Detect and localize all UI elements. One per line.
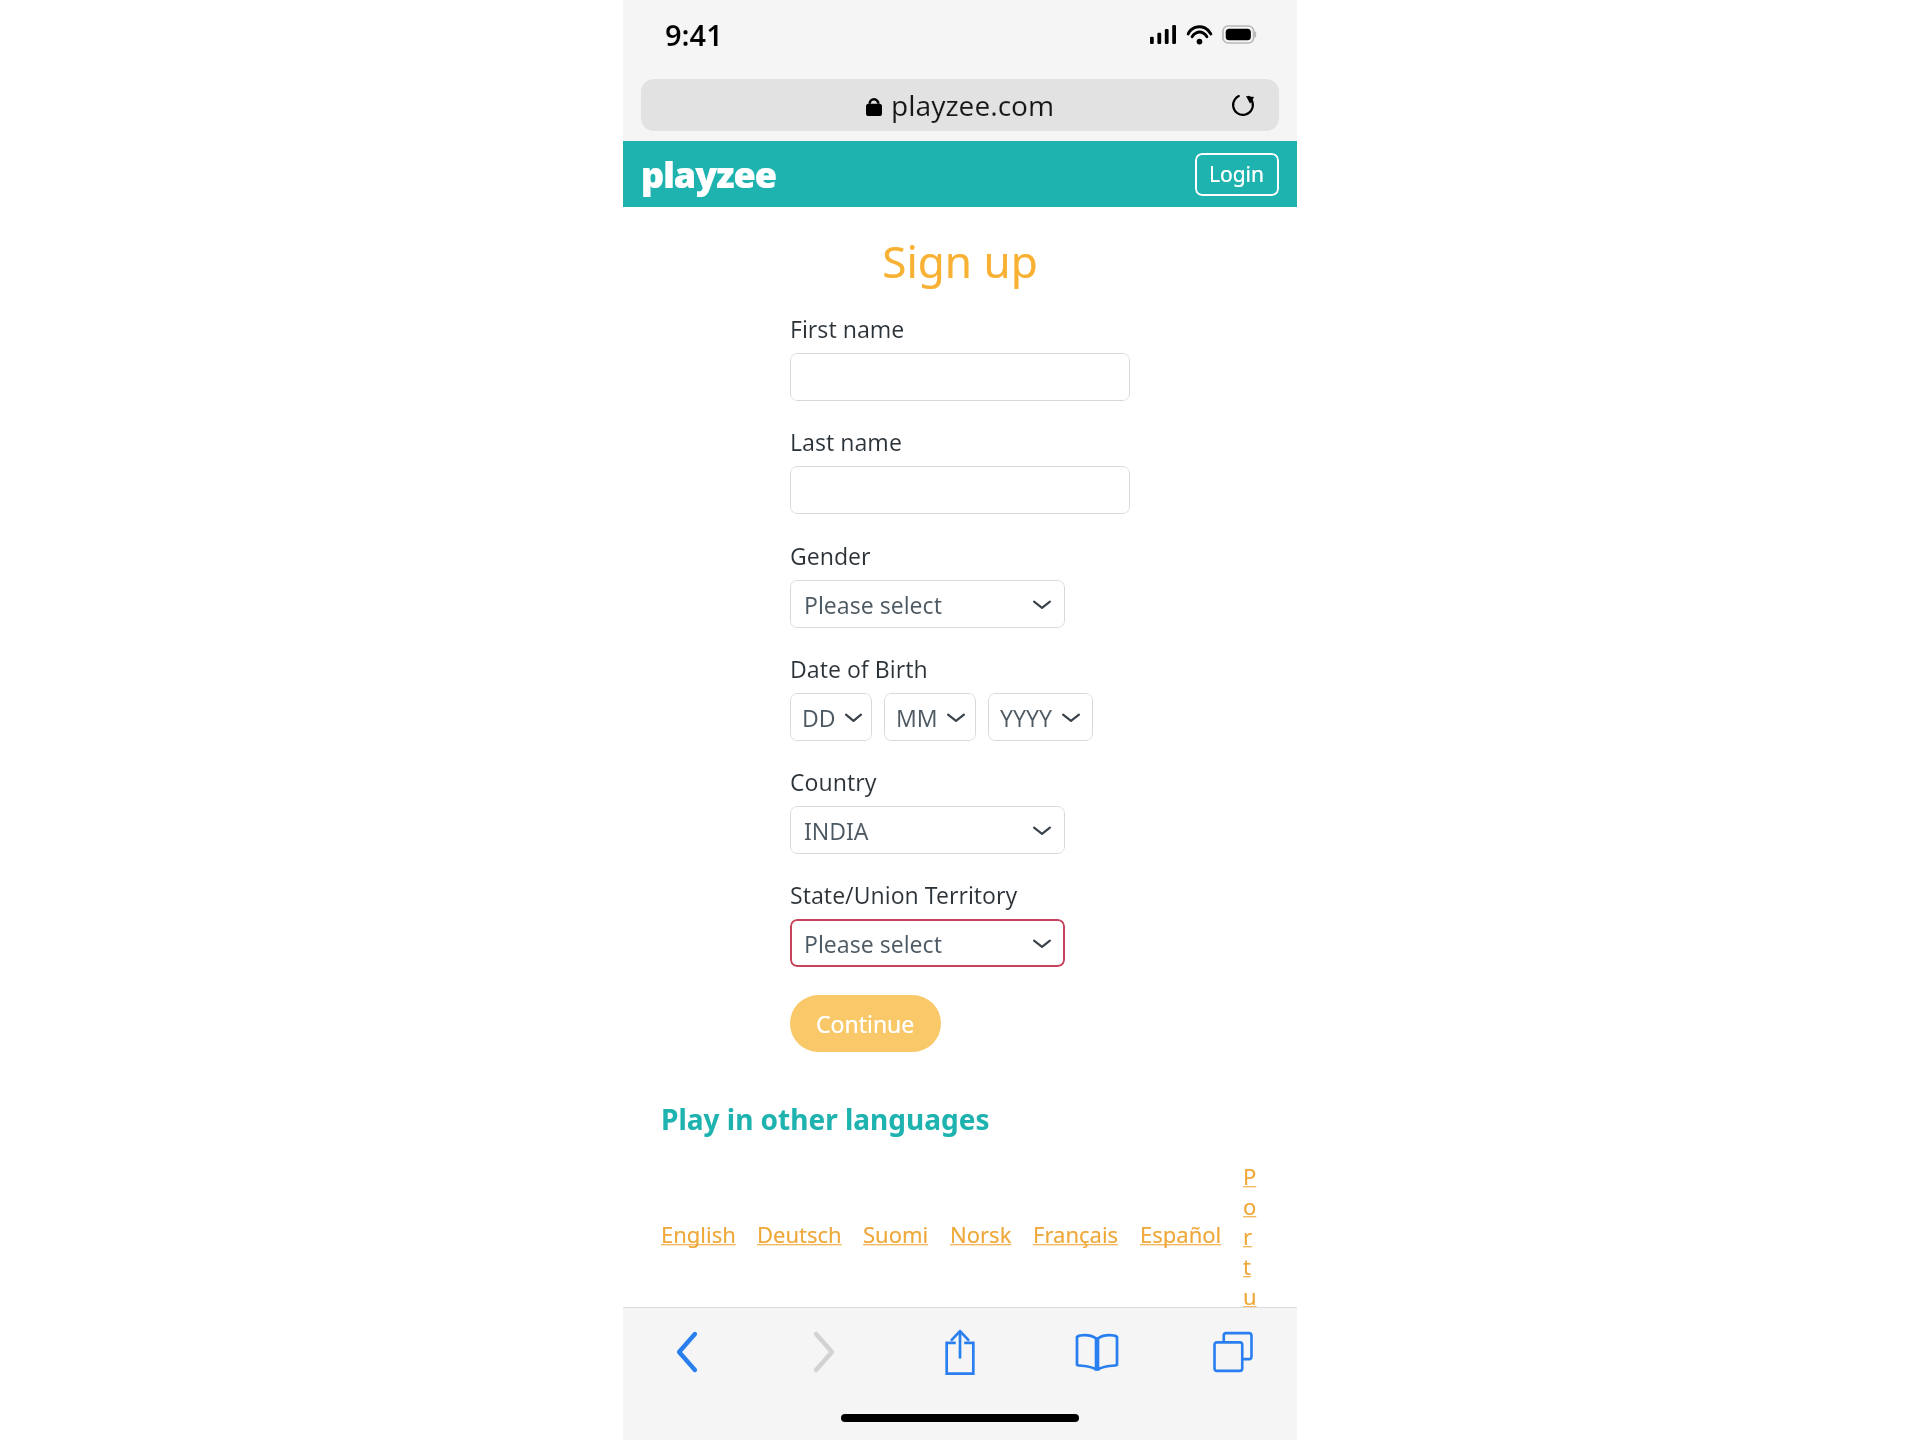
staticText: Norsk [950,1219,1012,1249]
staticText: Continue [816,1008,915,1039]
staticText: Deutsch [757,1219,842,1249]
button[interactable]: Reload [1223,85,1263,125]
button[interactable]: MM [884,693,976,741]
button[interactable]: Login [1195,153,1279,196]
staticText: INDIA [804,815,869,846]
staticText: MM [896,702,938,733]
staticText: Please select [804,589,942,620]
button[interactable]: Continue [790,995,941,1052]
button[interactable]: Español [1140,1219,1222,1249]
button[interactable]: Norsk [950,1219,1012,1249]
button[interactable]: Forward [786,1317,862,1387]
staticText: Español [1140,1219,1222,1249]
button[interactable]: Please select [790,919,1065,967]
staticText: 9:41 [665,15,723,54]
staticText: First name [790,313,905,344]
button[interactable]: Bookmarks [1059,1317,1135,1387]
staticText: DD [802,702,836,733]
staticText: Login [1209,160,1265,189]
staticText: Suomi [863,1219,929,1249]
staticText: State/Union Territory [790,879,1018,910]
staticText: Sign up [623,231,1297,291]
button[interactable]: Back [649,1317,725,1387]
staticText: Country [790,766,877,797]
button[interactable]: INDIA [790,806,1065,854]
button[interactable]: DD [790,693,872,741]
staticText: Português [1243,1161,1259,1307]
staticText: Date of Birth [790,653,928,684]
staticText: YYYY [1000,702,1053,733]
button[interactable]: Share [922,1317,998,1387]
button[interactable]: Français [1033,1219,1119,1249]
button[interactable]: English [661,1219,736,1249]
staticText: Français [1033,1219,1119,1249]
button[interactable]: playzee.com [641,79,1279,131]
staticText: playzee.com [891,86,1055,124]
button[interactable]: YYYY [988,693,1093,741]
button[interactable]: Português [1243,1161,1259,1307]
button[interactable] [790,353,1130,401]
staticText: Last name [790,426,902,457]
staticText: playzee [641,150,776,199]
staticText: Play in other languages [661,1100,990,1138]
button[interactable]: Suomi [863,1219,929,1249]
staticText: English [661,1219,736,1249]
button[interactable] [790,466,1130,514]
button[interactable]: Please select [790,580,1065,628]
staticText: Please select [804,928,942,959]
button[interactable]: Deutsch [757,1219,842,1249]
staticText: Gender [790,540,871,571]
button[interactable]: Tabs [1195,1317,1271,1387]
